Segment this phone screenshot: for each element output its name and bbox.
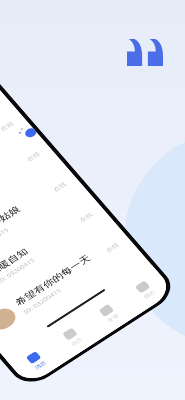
staticText: ID: 03200415 — [0, 226, 11, 255]
button[interactable]: 可爱的小姑娘 — [0, 162, 89, 287]
staticText: 在线 — [0, 120, 15, 133]
button[interactable]: 我的 — [120, 270, 171, 311]
staticText: 我的 — [142, 289, 156, 300]
staticText: 发现 — [106, 313, 120, 324]
staticText: 在线 — [104, 241, 120, 254]
button[interactable]: 温暖自知 — [0, 192, 115, 317]
staticText: 在线 — [78, 211, 94, 224]
button[interactable]: 希望有你的每一天 — [0, 222, 141, 347]
staticText: ID: 03200415 — [0, 256, 37, 286]
button[interactable]: Assistant — [16, 123, 41, 145]
button[interactable]: 亲爱的小可爱 — [0, 101, 36, 226]
button[interactable]: 发现 — [83, 293, 135, 334]
button[interactable]: 动态 — [47, 317, 98, 358]
staticText: ID: 03200415 — [22, 287, 64, 316]
staticText: 在线 — [25, 150, 41, 163]
staticText: 在线 — [52, 180, 68, 193]
staticText: 可爱的小姑娘 — [0, 203, 22, 247]
staticText: 温暖自知 — [0, 246, 30, 277]
button[interactable]: 你是我的阳光 — [0, 131, 62, 256]
staticText: 消息 — [33, 360, 47, 371]
staticText: 希望有你的每一天 — [13, 252, 93, 308]
button[interactable]: 消息 — [10, 340, 62, 382]
staticText: 动态 — [70, 336, 84, 347]
